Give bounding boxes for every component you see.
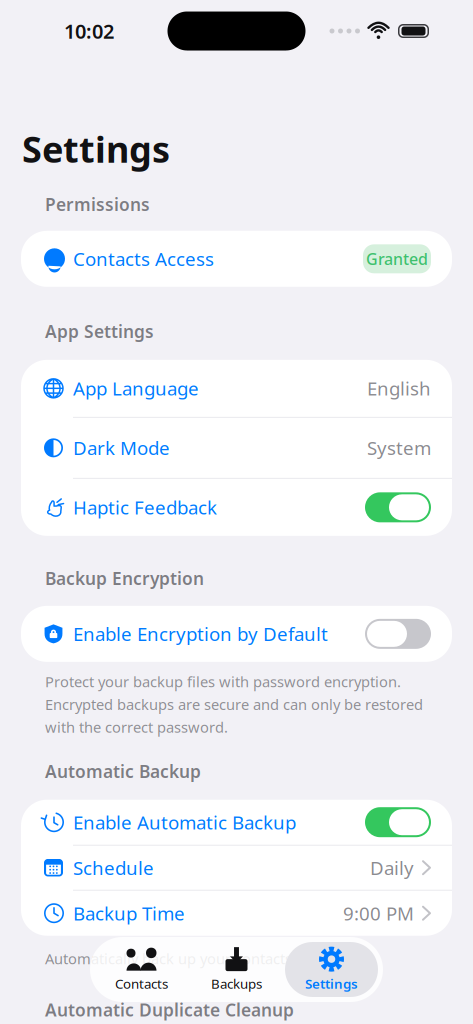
staticText: Automatic Duplicate Cleanup <box>45 998 294 1021</box>
staticText: Backup Encryption <box>45 567 204 590</box>
staticText: Backups <box>211 975 262 992</box>
staticText: 10:02 <box>64 18 114 44</box>
staticText: Granted <box>366 248 428 269</box>
staticText: Enable Encryption by Default <box>73 621 328 646</box>
staticText: English <box>367 376 431 401</box>
staticText: Enable Automatic Backup <box>73 810 296 835</box>
staticText: App Language <box>73 376 199 401</box>
button[interactable]: Settings <box>285 942 378 997</box>
staticText: Settings <box>22 125 170 173</box>
button[interactable]: App Language <box>21 360 452 417</box>
button[interactable]: Backups <box>190 942 283 997</box>
button[interactable]: Dark Mode <box>21 418 452 478</box>
button[interactable]: Backup Time <box>21 891 452 936</box>
staticText: Haptic Feedback <box>73 495 217 520</box>
button[interactable]: Schedule <box>21 846 452 890</box>
staticText: Schedule <box>73 855 154 880</box>
staticText: Backup Time <box>73 901 185 926</box>
staticText: Contacts Access <box>73 246 214 271</box>
button[interactable]: Contacts <box>95 942 188 997</box>
staticText: Automatic Backup <box>45 760 201 783</box>
staticText: System <box>367 435 431 460</box>
staticText: 9:00 PM <box>343 901 414 926</box>
staticText: App Settings <box>45 320 154 343</box>
button[interactable]: Enable Encryption by Default <box>21 606 452 662</box>
staticText: Automatically back up your contacts <box>45 949 292 968</box>
button[interactable]: Enable Automatic Backup <box>21 800 452 845</box>
staticText: Contacts <box>115 975 168 992</box>
staticText: Daily <box>370 855 414 880</box>
button[interactable]: Haptic Feedback <box>21 479 452 536</box>
staticText: Permissions <box>45 193 150 216</box>
button[interactable]: Contacts Access <box>21 231 452 287</box>
staticText: Protect your backup files with password … <box>45 672 423 737</box>
staticText: Settings <box>305 975 358 992</box>
staticText: Dark Mode <box>73 435 170 460</box>
